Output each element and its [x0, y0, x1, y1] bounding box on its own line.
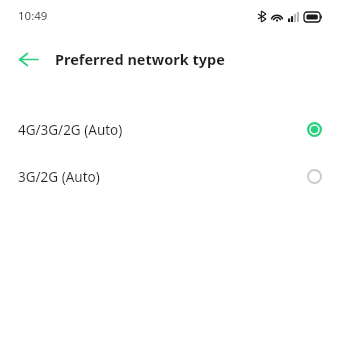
- staticText: Preferred network type: [55, 49, 225, 69]
- button[interactable]: Back: [12, 43, 44, 75]
- staticText: 3G/2G (Auto): [18, 168, 100, 186]
- staticText: 4G/3G/2G (Auto): [18, 121, 123, 139]
- staticText: 10:49: [18, 8, 48, 24]
- button[interactable]: 3G/2G (Auto): [0, 153, 340, 200]
- button[interactable]: 4G/3G/2G (Auto): [0, 106, 340, 153]
